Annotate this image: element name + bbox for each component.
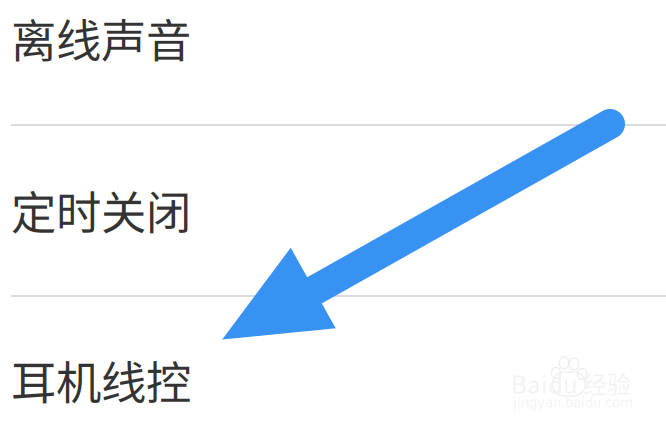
staticText: 耳机线控 [11, 347, 191, 413]
staticText: jingyan.baidu.com [513, 395, 633, 411]
button[interactable]: 耳机线控 [0, 295, 666, 431]
staticText: Baidu 经验 [511, 366, 631, 400]
button[interactable]: 定时关闭 [0, 124, 666, 295]
staticText: 离线声音 [11, 5, 191, 71]
button[interactable]: 离线声音 [0, 0, 666, 124]
staticText: 定时关闭 [11, 177, 191, 243]
